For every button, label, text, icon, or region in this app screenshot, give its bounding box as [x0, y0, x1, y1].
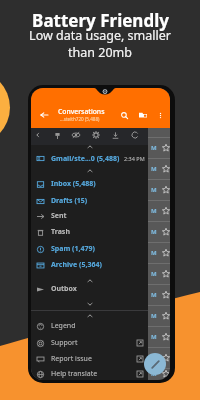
staticText: Help translate [51, 369, 98, 379]
staticText: Spam (1,479) [51, 244, 95, 254]
staticText: Archive (5,364) [51, 260, 102, 270]
button[interactable]: Sent [31, 208, 148, 224]
button[interactable]: Collapse [31, 166, 148, 176]
button[interactable]: Settings [88, 127, 104, 143]
button[interactable]: Gmail/ste...0 (5,488) [31, 151, 148, 166]
staticText: Sent [51, 211, 67, 221]
button[interactable]: Trash [31, 224, 148, 240]
button[interactable]: Report issue [31, 351, 148, 367]
button[interactable]: Legend [31, 318, 148, 334]
staticText: Conversations [58, 107, 105, 116]
button[interactable]: Expand [31, 299, 148, 309]
staticText: M [151, 312, 157, 320]
staticText: Battery Friendly [32, 9, 169, 32]
button[interactable]: Folders [135, 107, 151, 123]
staticText: M [151, 370, 157, 378]
button[interactable]: Compose [144, 353, 166, 375]
button[interactable]: Archive (5,364) [31, 257, 148, 273]
button[interactable]: Help translate [31, 366, 148, 380]
staticText: M [151, 186, 157, 194]
button[interactable]: Refresh [127, 127, 143, 143]
button[interactable]: Spam (1,479) [31, 241, 148, 257]
staticText: Support [51, 338, 78, 348]
button[interactable]: Inbox (5,488) [31, 176, 148, 192]
button[interactable]: Collapse [31, 142, 148, 152]
staticText: Gmail/ste...0 (5,488) [51, 154, 120, 164]
staticText: ...steith720 (5,488) [60, 116, 100, 122]
staticText: Trash [51, 227, 70, 237]
staticText: M [151, 249, 157, 257]
button[interactable]: Outbox [31, 281, 148, 297]
staticText: M [151, 165, 157, 173]
staticText: M [151, 144, 157, 152]
staticText: Report issue [51, 354, 92, 364]
button[interactable]: Back [35, 106, 53, 124]
staticText: Inbox (5,488) [51, 179, 96, 189]
staticText: Outbox [51, 284, 77, 294]
button[interactable]: More options [152, 107, 168, 123]
button[interactable]: Download [107, 127, 123, 143]
staticText: Drafts (15) [51, 196, 88, 206]
button[interactable]: Pin [49, 127, 65, 143]
button[interactable]: Hide read [68, 127, 84, 143]
button[interactable]: Support [31, 335, 148, 351]
button[interactable]: Collapse [31, 127, 46, 143]
staticText: M [151, 207, 157, 215]
staticText: Low data usage, smaller than 20mb [29, 27, 171, 61]
staticText: M [151, 270, 157, 278]
button[interactable]: Drafts (15) [31, 193, 148, 209]
staticText: M [151, 291, 157, 299]
button[interactable]: Search [116, 107, 132, 123]
staticText: M [151, 333, 157, 341]
button[interactable]: Collapse [31, 311, 148, 321]
staticText: Legend [51, 321, 76, 331]
staticText: 2:34 PM [124, 155, 145, 162]
button[interactable]: Collapse [31, 276, 148, 286]
staticText: M [151, 228, 157, 236]
